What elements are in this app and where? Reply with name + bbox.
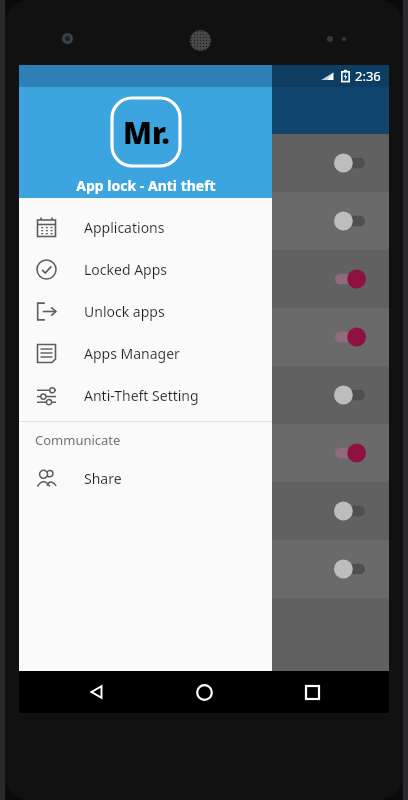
staticText: Applications xyxy=(84,218,165,237)
button[interactable]: Apps Manager xyxy=(19,332,272,374)
staticText: Share xyxy=(84,469,122,488)
staticText: Locked Apps xyxy=(84,260,168,279)
staticText: 2:36 xyxy=(355,67,381,85)
button[interactable]: On xyxy=(333,269,367,289)
button[interactable]: Anti-Theft Setting xyxy=(19,374,272,416)
button[interactable]: Off xyxy=(333,559,367,579)
staticText: Mr. xyxy=(123,112,170,153)
staticText: Apps Manager xyxy=(84,344,180,363)
staticText: Unlock apps xyxy=(84,302,165,321)
staticText: Anti-Theft Setting xyxy=(84,386,199,405)
button[interactable]: Recents xyxy=(282,671,342,713)
button[interactable]: Off xyxy=(19,540,389,598)
button[interactable]: On xyxy=(333,327,367,347)
button[interactable]: Locked Apps xyxy=(19,248,272,290)
button[interactable]: On xyxy=(333,443,367,463)
staticText: Communicate xyxy=(35,431,121,449)
button[interactable]: On xyxy=(19,250,389,308)
button[interactable]: Applications xyxy=(19,206,272,248)
button[interactable]: Back xyxy=(67,671,127,713)
button[interactable]: Off xyxy=(19,192,389,250)
button[interactable]: Off xyxy=(19,366,389,424)
button[interactable]: Off xyxy=(333,385,367,405)
button[interactable]: Home xyxy=(174,671,234,713)
button[interactable]: Off xyxy=(19,134,389,192)
button[interactable]: On xyxy=(19,308,389,366)
button[interactable]: Off xyxy=(19,482,389,540)
staticText: App lock - Anti theft xyxy=(76,176,216,195)
button[interactable]: Off xyxy=(333,211,367,231)
button[interactable]: Off xyxy=(333,501,367,521)
button[interactable]: Unlock apps xyxy=(19,290,272,332)
button[interactable]: Share xyxy=(19,457,272,499)
button[interactable]: On xyxy=(19,424,389,482)
button[interactable]: Off xyxy=(333,153,367,173)
